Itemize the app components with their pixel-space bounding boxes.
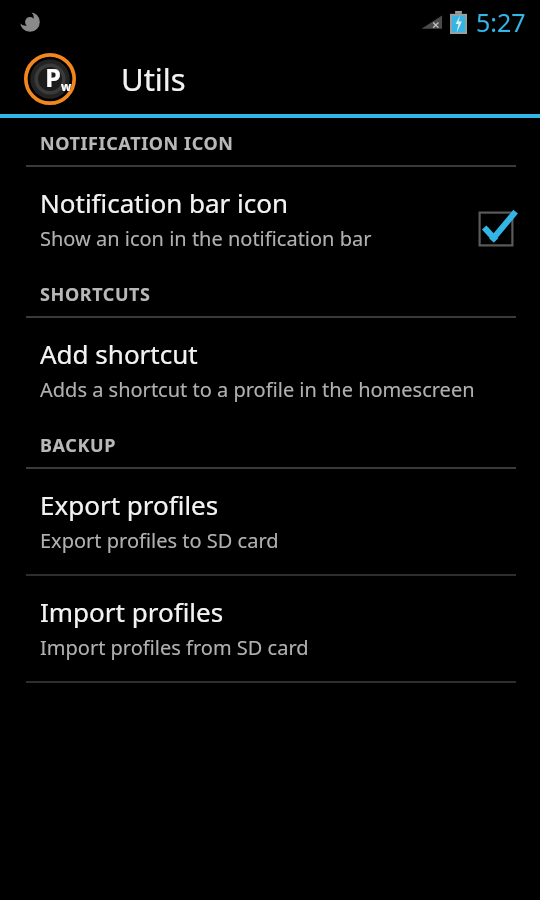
button[interactable]: Notification bar icon checkbox, checked bbox=[476, 209, 516, 249]
button[interactable]: Import profiles bbox=[0, 576, 540, 681]
button[interactable]: Export profiles bbox=[0, 469, 540, 574]
staticText: Import profiles from SD card bbox=[40, 634, 309, 661]
staticText: Import profiles bbox=[40, 594, 224, 629]
button[interactable]: P bbox=[0, 44, 540, 114]
staticText: SHORTCUTS bbox=[40, 282, 151, 307]
staticText: Adds a shortcut to a profile in the home… bbox=[40, 376, 475, 403]
staticText: Show an icon in the notification bar bbox=[40, 225, 372, 252]
staticText: Add shortcut bbox=[40, 336, 198, 371]
staticText: Utils bbox=[121, 58, 186, 100]
staticText: P bbox=[45, 60, 61, 94]
staticText: NOTIFICATION ICON bbox=[40, 131, 234, 156]
staticText: w bbox=[61, 78, 72, 94]
staticText: Export profiles bbox=[40, 487, 219, 522]
staticText: 5:27 bbox=[476, 5, 526, 39]
staticText: BACKUP bbox=[40, 433, 116, 458]
button[interactable]: Notification bar icon bbox=[0, 167, 540, 272]
staticText: Export profiles to SD card bbox=[40, 527, 279, 554]
button[interactable]: Add shortcut bbox=[0, 318, 540, 423]
staticText: Notification bar icon bbox=[40, 185, 289, 220]
